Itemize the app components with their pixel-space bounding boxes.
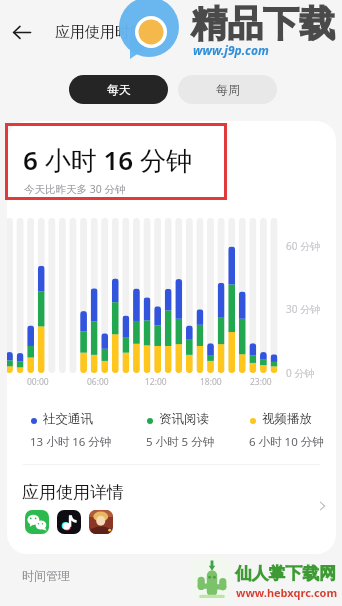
- staticText: 仙人掌下载网: [235, 563, 336, 584]
- button[interactable]: 每周: [178, 75, 277, 104]
- staticText: 00:00: [27, 376, 49, 388]
- staticText: 精品下载: [191, 1, 335, 46]
- staticText: 0 分钟: [286, 366, 315, 380]
- staticText: 每天: [107, 82, 131, 97]
- staticText: 应用使用时间: [55, 23, 145, 42]
- staticText: 12:00: [145, 376, 167, 388]
- staticText: 5 小时 5 分钟: [146, 434, 215, 450]
- button[interactable]: Back: [4, 14, 40, 50]
- staticText: 社交通讯: [43, 411, 93, 427]
- staticText: 资讯阅读: [159, 411, 209, 427]
- staticText: 60 分钟: [286, 239, 321, 253]
- staticText: 今天比昨天多 30 分钟: [24, 182, 126, 196]
- staticText: 23:00: [250, 376, 272, 388]
- staticText: 30 分钟: [286, 302, 321, 316]
- button[interactable]: 应用使用详情: [7, 463, 336, 552]
- staticText: www.j9p.com: [193, 42, 269, 58]
- staticText: 18:00: [200, 376, 222, 388]
- staticText: 视频播放: [262, 411, 312, 427]
- staticText: 每周: [216, 82, 240, 97]
- button[interactable]: 每天: [69, 75, 168, 104]
- staticText: www.hebxqrc.com: [236, 585, 338, 600]
- staticText: 应用使用详情: [22, 482, 124, 503]
- staticText: 6 小时 10 分钟: [249, 434, 324, 450]
- staticText: 6 小时 16 分钟: [23, 142, 192, 178]
- staticText: 06:00: [87, 376, 109, 388]
- staticText: 13 小时 16 分钟: [30, 434, 112, 450]
- staticText: 时间管理: [22, 568, 70, 583]
